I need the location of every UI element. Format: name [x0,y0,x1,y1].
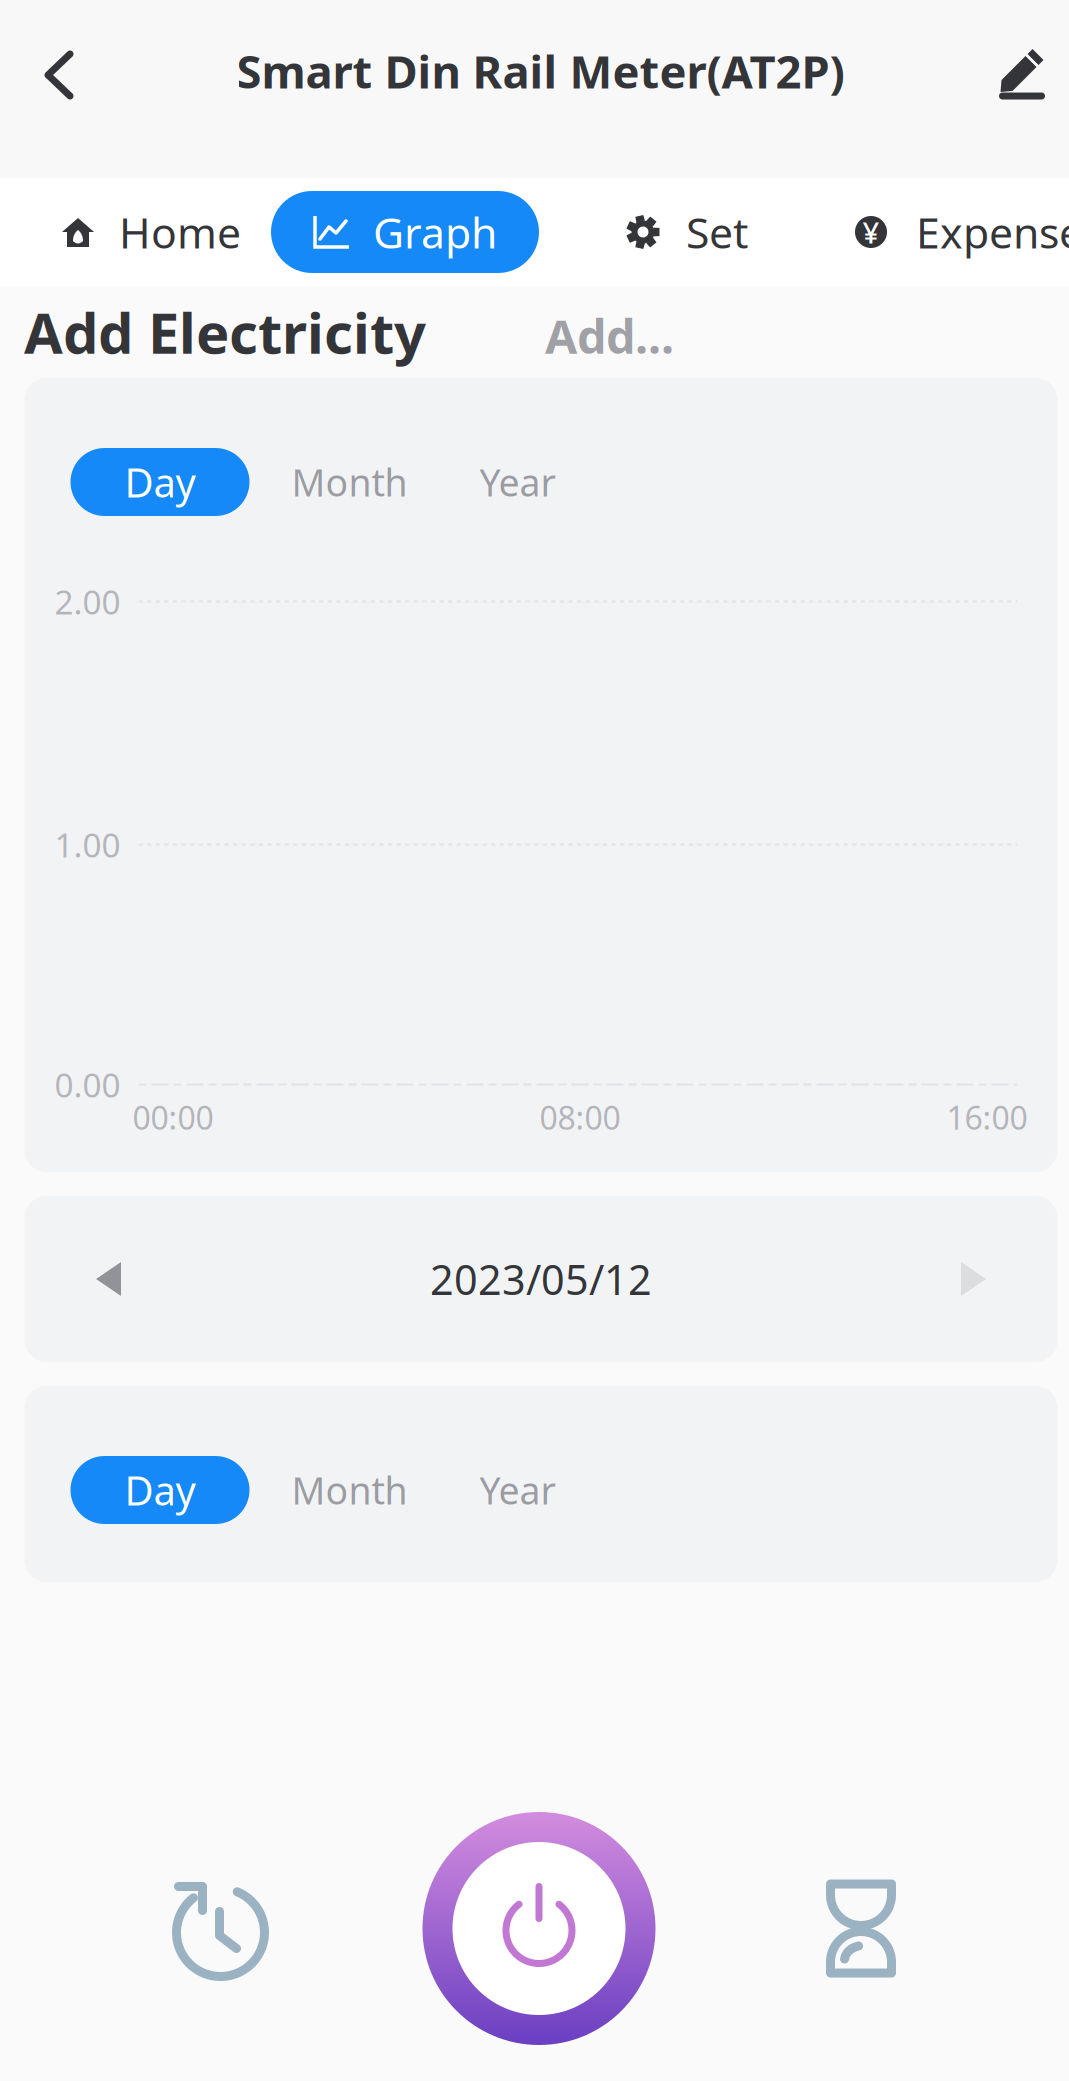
staticText: Day [124,455,195,508]
staticText: Home [119,204,241,260]
button[interactable]: Power [301,1802,777,2055]
button[interactable]: Next day [928,1209,1018,1349]
staticText: Add... [545,305,674,367]
button[interactable]: Month [249,448,449,516]
staticText: Day [124,1463,195,1516]
button[interactable]: Back [11,25,107,125]
staticText: 0.00 [54,1062,120,1107]
button[interactable]: Year [449,448,585,516]
staticText: Year [479,457,555,507]
staticText: Set [686,204,748,260]
staticText: 16:00 [946,1096,1027,1138]
button[interactable]: Day [70,448,249,516]
staticText: 2023/05/12 [430,1252,652,1306]
staticText: ¥ [862,212,879,251]
staticText: 2.00 [54,579,120,624]
staticText: Add Electricity [24,295,426,369]
button[interactable]: Month [249,1456,449,1524]
button[interactable]: Graph [271,191,539,273]
staticText: 08:00 [539,1096,620,1138]
button[interactable]: History [141,1808,301,2048]
staticText: Month [291,457,407,507]
button[interactable]: Set [539,191,778,273]
staticText: Smart Din Rail Meter(AT2P) [236,41,844,101]
button[interactable]: Day [70,1456,249,1524]
button[interactable]: Year [449,1456,585,1524]
button[interactable]: Previous day [63,1209,153,1349]
button[interactable]: ¥ [778,191,1069,273]
button[interactable]: Home [41,191,271,273]
button[interactable]: Countdown timer [777,1808,945,2048]
staticText: Month [291,1465,407,1515]
staticText: Graph [373,204,497,260]
staticText: 00:00 [132,1096,213,1138]
button[interactable]: Edit [973,25,1069,125]
staticText: 1.00 [54,822,120,867]
staticText: Expense [916,204,1069,260]
staticText: Year [479,1465,555,1515]
